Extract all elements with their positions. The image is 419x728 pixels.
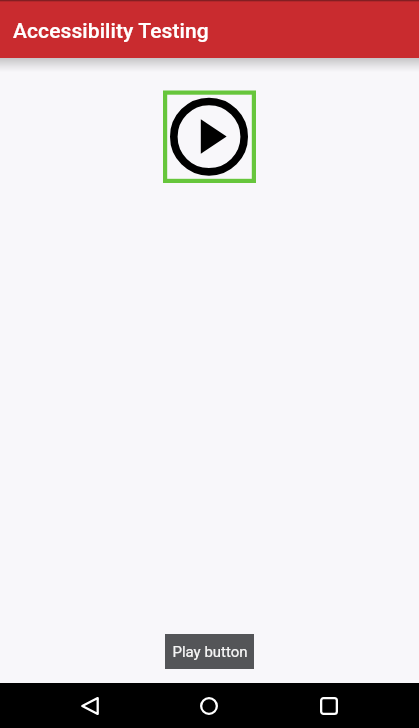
button[interactable]: Back — [66, 683, 114, 728]
button[interactable]: Recent apps — [305, 683, 353, 728]
staticText: Accessibility Testing — [13, 19, 209, 44]
button[interactable]: Home — [185, 683, 233, 728]
button[interactable]: Play button — [163, 90, 257, 184]
staticText: Play button — [172, 643, 248, 661]
